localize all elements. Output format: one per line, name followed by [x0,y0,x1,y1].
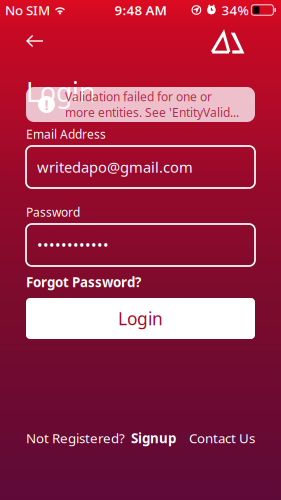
staticText: Forgot Password? [26,273,141,291]
staticText: Signup [131,429,176,447]
staticText: Login [118,307,163,330]
staticText: 9:48 AM [114,1,166,19]
staticText: Contact Us [189,429,255,447]
staticText: •••••••••••• [37,235,109,255]
staticText: Email Address [26,126,106,142]
staticText: 34% [221,1,248,19]
button[interactable]: Signup [131,429,176,447]
button[interactable]: Contact Us [189,429,255,447]
button[interactable]: Forgot Password? [0,274,281,290]
button[interactable]: Login [0,298,281,339]
staticText: No SIM [5,1,50,19]
button[interactable]: Back [18,23,52,58]
staticText: Not Registered? [26,429,125,447]
staticText: writedapo@gmail.com [37,157,193,177]
staticText: Password [26,204,80,220]
staticText: Validation failed for one or more entiti… [65,89,239,120]
staticText: ! [44,95,48,114]
staticText: Login [26,74,95,109]
